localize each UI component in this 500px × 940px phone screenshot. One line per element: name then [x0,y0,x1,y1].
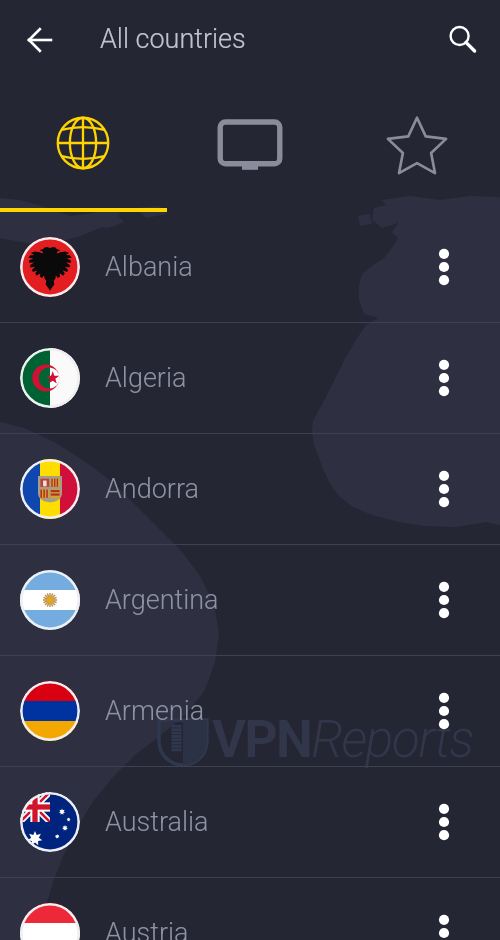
button[interactable]: More options [416,461,472,517]
button[interactable]: More options [416,239,472,295]
button[interactable]: Algeria [0,323,500,433]
button[interactable]: Australia [0,767,500,877]
staticText: Reports [311,709,473,770]
button[interactable]: Andorra [0,434,500,544]
staticText: Andorra [105,473,199,505]
staticText: Argentina [105,584,219,616]
staticText: Australia [105,806,209,838]
button[interactable]: Streaming [166,78,333,208]
staticText: Armenia [105,695,205,727]
button[interactable]: More options [416,794,472,850]
button[interactable]: Argentina [0,545,500,655]
button[interactable]: More options [416,683,472,739]
button[interactable]: Back [16,15,64,63]
button[interactable]: All countries [0,78,166,208]
button[interactable]: Albania [0,212,500,322]
staticText: Albania [105,251,193,283]
staticText: Austria [105,917,189,940]
button[interactable]: Austria [0,878,500,940]
button[interactable]: More options [416,350,472,406]
button[interactable]: Armenia [0,656,500,766]
staticText: All countries [100,23,246,55]
button[interactable]: More options [416,572,472,628]
staticText: Algeria [105,362,187,394]
button[interactable]: Search [436,13,488,65]
button[interactable]: More options [416,905,472,940]
button[interactable]: Favourites [333,78,500,208]
staticText: VPN [212,709,311,770]
